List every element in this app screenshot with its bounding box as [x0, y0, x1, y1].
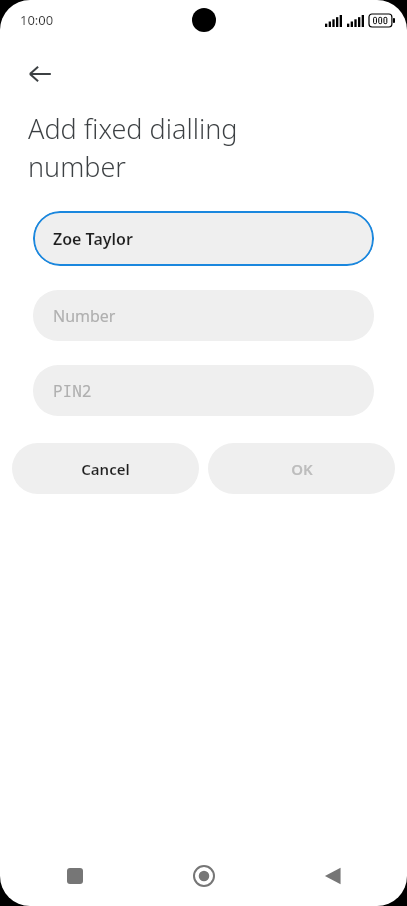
- staticText: Number: [53, 305, 116, 327]
- staticText: Add fixed dialling number: [28, 110, 337, 185]
- button[interactable]: Cancel: [12, 443, 199, 494]
- button[interactable]: PIN2: [33, 365, 374, 416]
- button[interactable]: Back: [309, 852, 357, 900]
- button[interactable]: Number: [33, 290, 374, 341]
- button[interactable]: Zoe Taylor: [33, 211, 374, 266]
- button[interactable]: Home: [180, 852, 228, 900]
- staticText: OK: [291, 459, 313, 479]
- staticText: Cancel: [81, 459, 130, 479]
- staticText: 10:00: [20, 11, 54, 29]
- staticText: Zoe Taylor: [53, 228, 133, 250]
- button[interactable]: OK: [208, 443, 395, 494]
- staticText: PIN2: [53, 380, 92, 402]
- button[interactable]: Back: [14, 48, 66, 100]
- button[interactable]: Recent apps: [51, 852, 99, 900]
